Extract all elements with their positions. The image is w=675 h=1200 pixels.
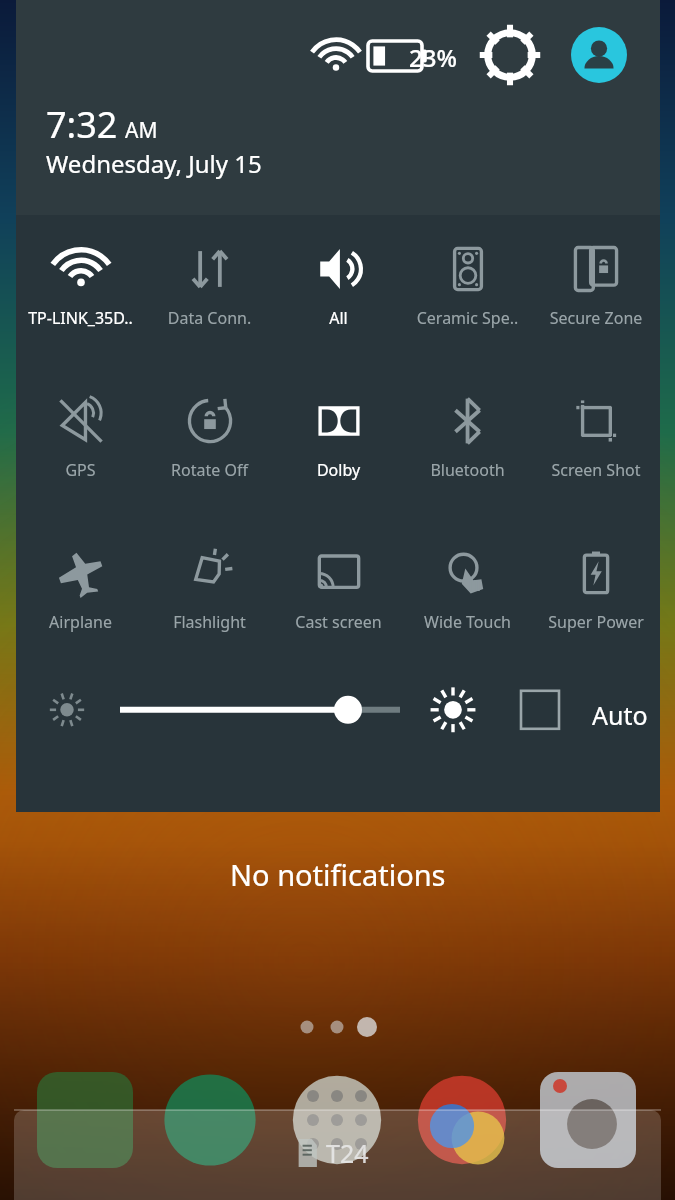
staticText: 23%	[409, 41, 457, 74]
staticText: Flashlight	[145, 611, 274, 633]
staticText: Screen Shot	[532, 459, 660, 481]
button[interactable]: Rotate Off	[145, 381, 274, 509]
button[interactable]: Screen Shot	[532, 381, 660, 509]
button[interactable]: Brightness slider	[46, 681, 476, 737]
staticText: Ceramic Spe..	[403, 307, 532, 329]
staticText: Dolby	[274, 459, 403, 481]
staticText: Rotate Off	[145, 459, 274, 481]
staticText: Data Conn.	[145, 307, 274, 329]
staticText: All	[274, 307, 403, 329]
button[interactable]: Cast screen	[274, 533, 403, 661]
button[interactable]	[14, 1110, 661, 1200]
staticText: TP-LINK_35D..	[16, 307, 145, 329]
button[interactable]: Airplane	[16, 533, 145, 661]
button[interactable]: Flashlight	[145, 533, 274, 661]
staticText: Secure Zone	[532, 307, 660, 329]
staticText: Wide Touch	[403, 611, 532, 633]
staticText: GPS	[16, 459, 145, 481]
button[interactable]: GPS	[16, 381, 145, 509]
staticText: Bluetooth	[403, 459, 532, 481]
staticText: Airplane	[16, 611, 145, 633]
button[interactable]: Secure Zone	[532, 229, 660, 357]
button[interactable]: Data Conn.	[145, 229, 274, 357]
button[interactable]: Dolby	[274, 381, 403, 509]
button[interactable]: Ceramic Spe..	[403, 229, 532, 357]
staticText: T24	[326, 1136, 369, 1170]
staticText: AM	[125, 116, 158, 145]
button[interactable]: Super Power	[532, 533, 660, 661]
button[interactable]: Wide Touch	[403, 533, 532, 661]
button[interactable]: All	[274, 229, 403, 357]
staticText: No notifications	[230, 855, 446, 894]
staticText: 7:32	[46, 100, 118, 149]
staticText: Wednesday, July 15	[46, 147, 262, 180]
staticText: Auto	[592, 698, 648, 732]
button[interactable]: TP-LINK_35D..	[16, 229, 145, 357]
staticText: Cast screen	[274, 611, 403, 633]
button[interactable]: Bluetooth	[403, 381, 532, 509]
staticText: Super Power	[532, 611, 660, 633]
button[interactable]: Auto	[514, 690, 664, 740]
